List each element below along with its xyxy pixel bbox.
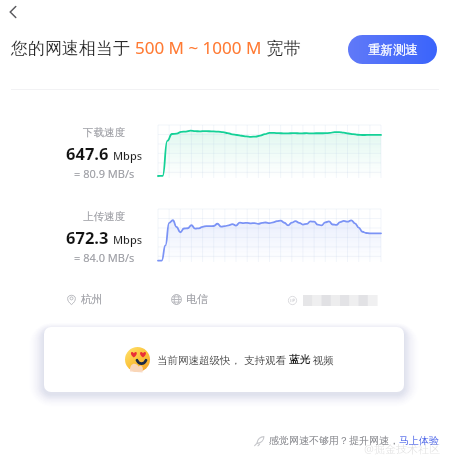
- staticText: 上传速度: [83, 210, 125, 223]
- staticText: 500 M ~ 1000 M: [135, 36, 262, 59]
- staticText: 马上体验: [399, 434, 439, 447]
- button[interactable]: Back: [0, 0, 28, 26]
- staticText: 杭州: [81, 292, 103, 306]
- staticText: = 80.9 MB/s: [74, 166, 135, 181]
- staticText: @掘金技术社区: [364, 441, 440, 456]
- button[interactable]: 感觉网速不够用？提升网速，: [254, 434, 439, 447]
- staticText: 感觉网速不够用？提升网速，: [269, 434, 399, 447]
- staticText: 647.6: [66, 142, 109, 164]
- staticText: Mbps: [113, 148, 143, 163]
- staticText: 重新测速: [368, 42, 418, 58]
- staticText: 672.3: [66, 226, 109, 248]
- staticText: 当前网速超级快，: [157, 353, 244, 367]
- staticText: 宽带: [262, 36, 301, 59]
- staticText: 支持观看: [244, 353, 289, 367]
- staticText: 电信: [186, 292, 208, 306]
- button[interactable]: 重新测速: [348, 35, 437, 64]
- staticText: 蓝光: [289, 353, 310, 366]
- staticText: = 84.0 MB/s: [74, 250, 135, 265]
- staticText: 您的网速相当于: [11, 36, 135, 59]
- staticText: Mbps: [113, 232, 143, 247]
- button[interactable]: 当前网速超级快，: [44, 327, 404, 392]
- staticText: 视频: [310, 353, 334, 367]
- staticText: 下载速度: [83, 126, 125, 139]
